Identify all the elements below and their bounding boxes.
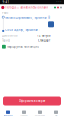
staticText: Стандарт (38, 39, 50, 42)
staticText: Сочи Адлер, Терминал 1 (5, 28, 41, 32)
staticText: 12 августа (37, 34, 50, 37)
button[interactable]: Открыть карту (48, 21, 54, 27)
staticText: Рейс (2, 11, 8, 15)
staticText: Тариф (2, 39, 10, 42)
staticText: Дата вылета (2, 34, 17, 37)
staticText: Победа — авиабилеты онлайн (5, 6, 48, 9)
staticText: Маршрутная квитанция (7, 45, 39, 48)
staticText: Главная (20, 115, 27, 116)
staticText: 9:41 (2, 0, 9, 4)
staticText: Москва Шереметьево, Терминал B (5, 16, 50, 19)
button[interactable]: Мои заказы (0, 110, 16, 116)
staticText: Расписание (35, 115, 45, 116)
button[interactable]: Главная (16, 110, 32, 116)
staticText: · · · (56, 0, 61, 4)
staticText: Оформить возврат (19, 99, 45, 103)
staticText: Ещё (54, 115, 57, 116)
staticText: Мои заказы (3, 115, 12, 116)
button[interactable]: Расписание (32, 110, 48, 116)
button[interactable]: Ещё (48, 110, 64, 116)
button[interactable]: Оформить возврат (3, 96, 61, 105)
